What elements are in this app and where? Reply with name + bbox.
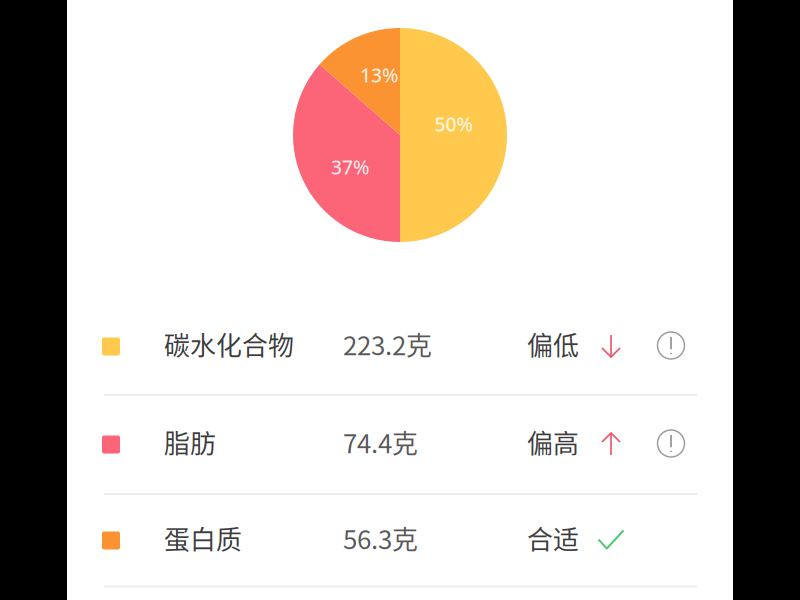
button[interactable]: 脂肪偏高详情 <box>656 428 686 458</box>
staticText: 223.2克 <box>343 325 432 363</box>
staticText: 37% <box>331 154 369 180</box>
button[interactable]: 碳水化合物偏低详情 <box>656 330 686 360</box>
staticText: 50% <box>434 111 472 137</box>
staticText: 蛋白质 <box>164 519 242 557</box>
button[interactable]: 碳水化合物 <box>67 295 733 393</box>
staticText: 合适 <box>527 519 579 557</box>
staticText: 碳水化合物 <box>164 325 294 363</box>
button[interactable]: 蛋白质 <box>67 489 733 587</box>
staticText: 74.4克 <box>343 423 418 461</box>
staticText: 56.3克 <box>343 519 418 557</box>
button[interactable]: 脂肪 <box>67 393 733 491</box>
staticText: 13% <box>360 62 398 88</box>
staticText: 偏高 <box>527 423 579 461</box>
staticText: 脂肪 <box>164 423 216 461</box>
staticText: 偏低 <box>527 325 579 363</box>
